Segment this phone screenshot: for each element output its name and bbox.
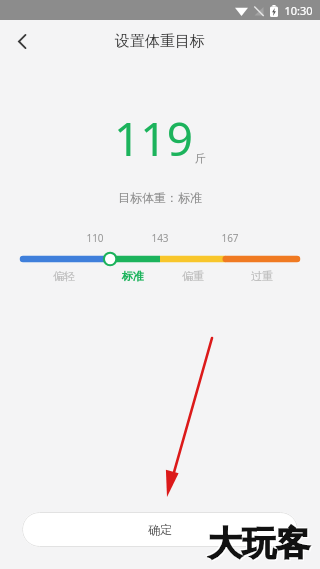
staticText: 大玩客 [209, 523, 311, 566]
staticText: 偏重 [182, 269, 204, 283]
button[interactable]: Back [0, 20, 44, 62]
staticText: 目标体重：标准 [118, 190, 202, 205]
staticText: 偏轻 [53, 269, 75, 283]
staticText: 斤 [195, 151, 206, 165]
staticText: 10:30 [284, 3, 313, 18]
staticText: 110 [83, 231, 107, 245]
staticText: 大玩客 [207, 521, 309, 564]
button[interactable]: 确定 [22, 512, 298, 547]
staticText: 过重 [251, 269, 273, 283]
staticText: 119 [114, 107, 193, 170]
staticText: 确定 [148, 522, 172, 537]
staticText: 143 [148, 231, 172, 245]
staticText: 设置体重目标 [115, 32, 205, 51]
staticText: 大玩客 [208, 522, 310, 565]
staticText: 标准 [122, 269, 144, 283]
staticText: 167 [218, 231, 242, 245]
